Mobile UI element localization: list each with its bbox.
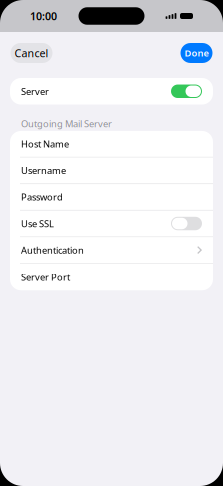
button[interactable]: Username: [10, 157, 213, 184]
button[interactable]: Use SSL: [10, 211, 213, 237]
button[interactable]: Server Port: [10, 264, 213, 290]
button[interactable]: Cancel: [10, 43, 52, 63]
button[interactable]: Authentication: [10, 237, 213, 264]
staticText: Host Name: [21, 138, 69, 150]
staticText: Username: [21, 164, 66, 177]
staticText: Password: [21, 191, 63, 203]
button[interactable]: Server: [10, 78, 213, 105]
staticText: Server Port: [21, 271, 70, 283]
staticText: Outgoing Mail Server: [21, 117, 112, 130]
staticText: Authentication: [21, 244, 84, 256]
staticText: Use SSL: [21, 217, 54, 230]
staticText: Cancel: [14, 46, 48, 60]
staticText: Done: [184, 47, 208, 59]
button[interactable]: Host Name: [10, 131, 213, 157]
button[interactable]: Password: [10, 184, 213, 211]
staticText: 10:00: [30, 9, 57, 23]
staticText: Server: [21, 85, 49, 97]
button[interactable]: Done: [180, 43, 212, 63]
